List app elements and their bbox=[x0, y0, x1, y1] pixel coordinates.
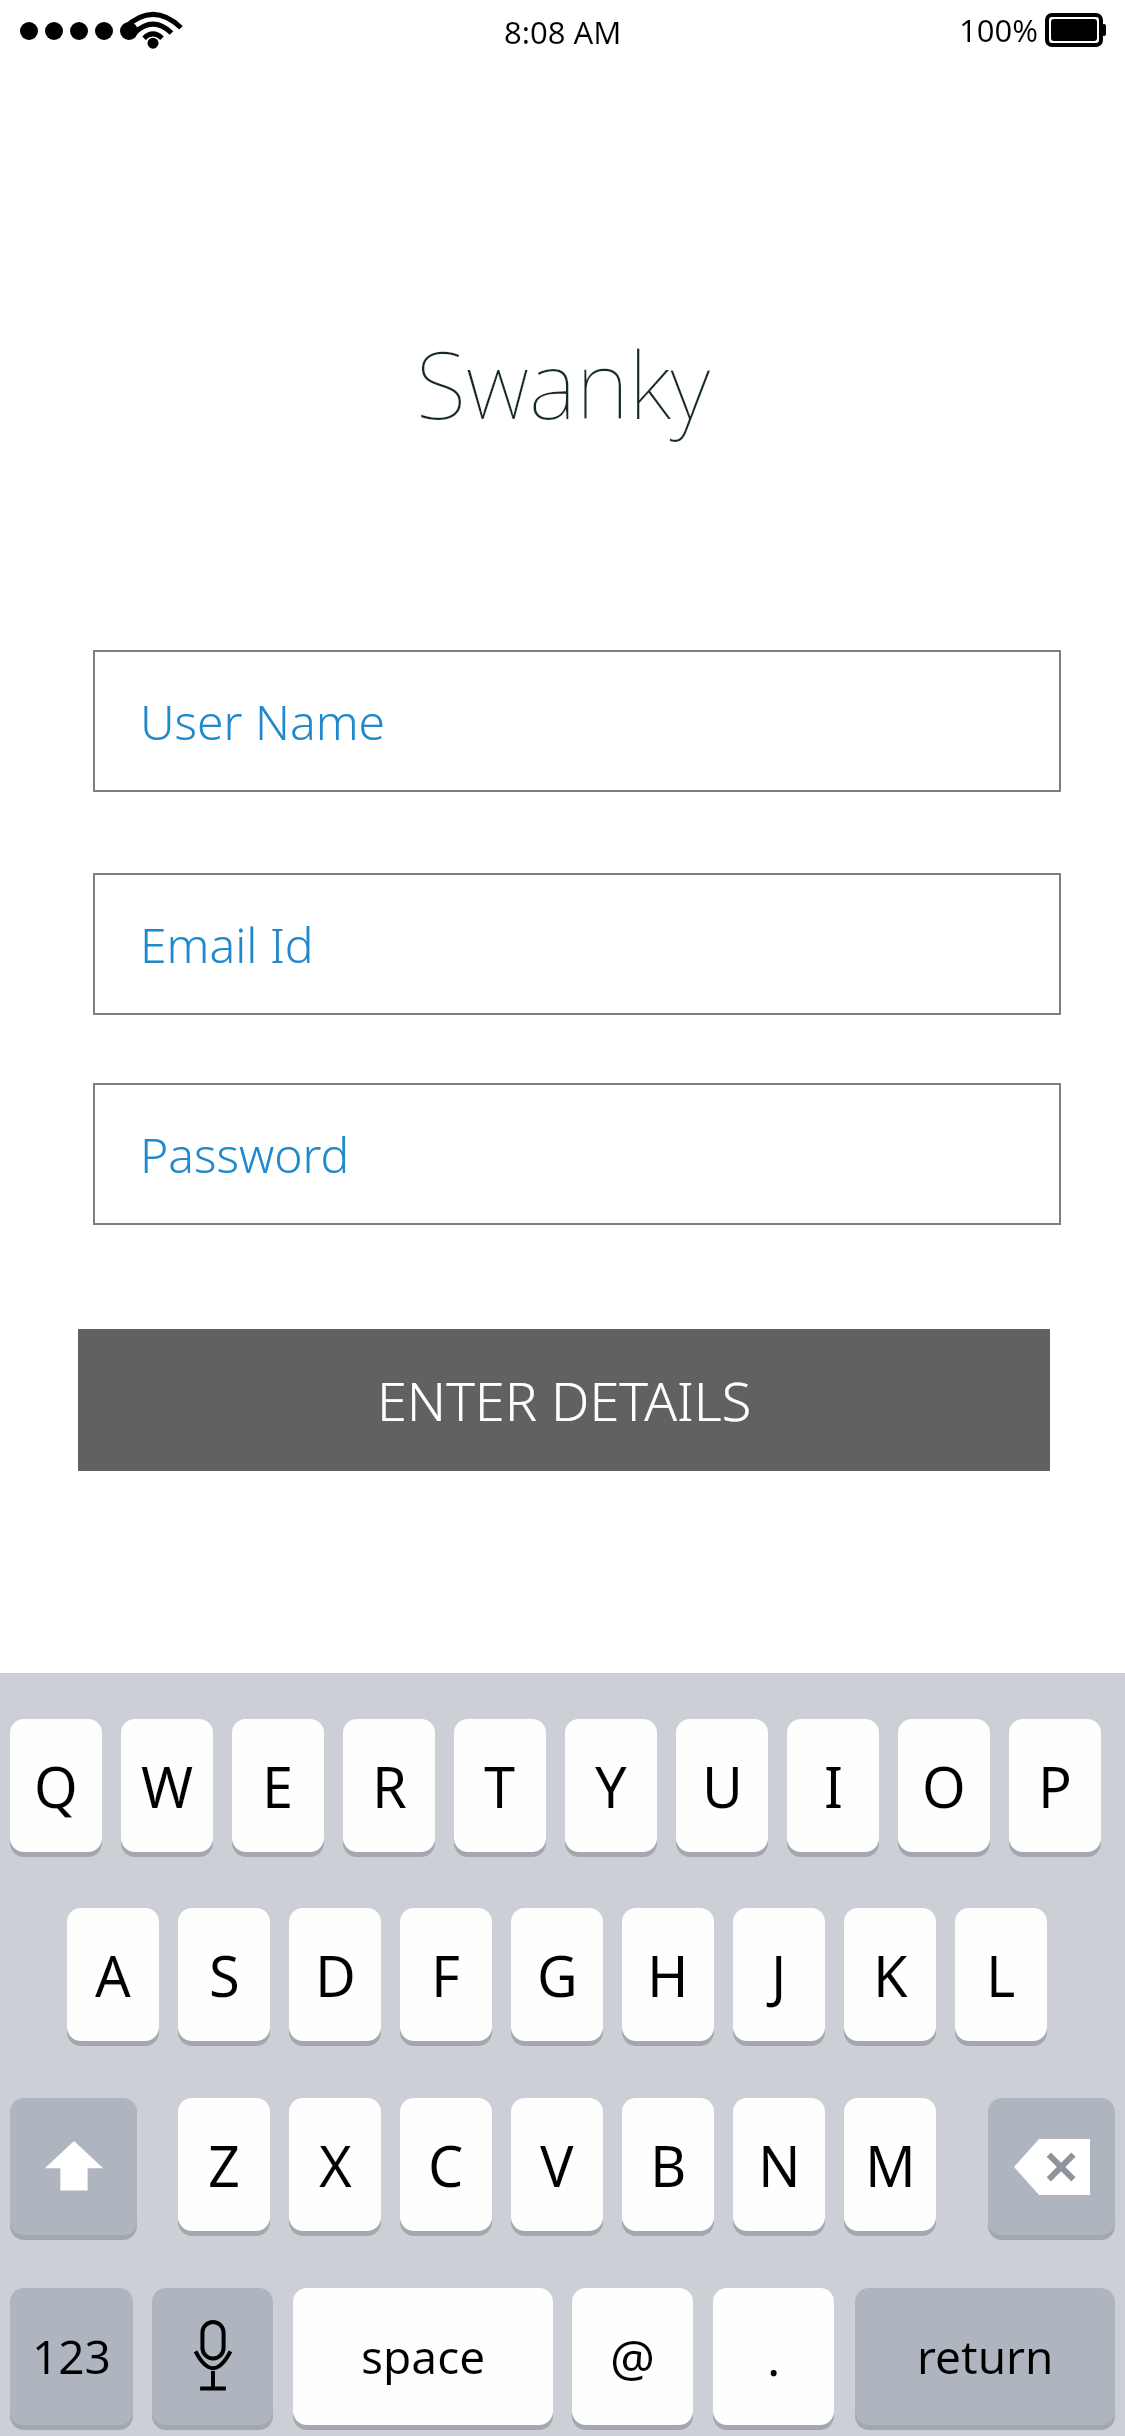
button[interactable]: V bbox=[511, 2098, 603, 2231]
button[interactable]: N bbox=[733, 2098, 825, 2231]
button[interactable]: R bbox=[343, 1719, 435, 1852]
button[interactable]: D bbox=[289, 1908, 381, 2041]
staticText: F bbox=[431, 1937, 461, 2013]
staticText: 8:08 AM bbox=[504, 11, 622, 53]
button[interactable]: . bbox=[713, 2288, 834, 2425]
staticText: O bbox=[922, 1748, 966, 1824]
staticText: L bbox=[986, 1937, 1016, 2013]
staticText: H bbox=[647, 1937, 689, 2013]
staticText: I bbox=[824, 1748, 843, 1824]
button[interactable]: Y bbox=[565, 1719, 657, 1852]
staticText: B bbox=[650, 2127, 687, 2203]
button[interactable]: X bbox=[289, 2098, 381, 2231]
button[interactable]: Email Id bbox=[93, 873, 1061, 1015]
button[interactable]: Dictation bbox=[152, 2288, 273, 2425]
button[interactable]: C bbox=[400, 2098, 492, 2231]
staticText: P bbox=[1038, 1748, 1072, 1824]
button[interactable]: I bbox=[787, 1719, 879, 1852]
staticText: ENTER DETAILS bbox=[377, 1363, 752, 1437]
button[interactable]: Backspace bbox=[988, 2098, 1115, 2235]
staticText: A bbox=[95, 1937, 131, 2013]
button[interactable]: U bbox=[676, 1719, 768, 1852]
staticText: V bbox=[540, 2127, 574, 2203]
staticText: Swanky bbox=[416, 321, 710, 446]
staticText: Z bbox=[208, 2127, 241, 2203]
staticText: R bbox=[372, 1748, 407, 1824]
staticText: X bbox=[319, 2127, 352, 2203]
button[interactable]: return bbox=[855, 2288, 1115, 2425]
staticText: S bbox=[209, 1937, 240, 2013]
button[interactable]: @ bbox=[572, 2288, 693, 2425]
button[interactable]: B bbox=[622, 2098, 714, 2231]
button[interactable]: ENTER DETAILS bbox=[78, 1329, 1050, 1471]
staticText: Y bbox=[595, 1748, 627, 1824]
staticText: U bbox=[702, 1748, 743, 1824]
staticText: @ bbox=[610, 2323, 655, 2391]
staticText: Email Id bbox=[140, 912, 314, 977]
staticText: return bbox=[917, 2325, 1054, 2388]
button[interactable]: M bbox=[844, 2098, 936, 2231]
button[interactable]: O bbox=[898, 1719, 990, 1852]
button[interactable]: F bbox=[400, 1908, 492, 2041]
staticText: space bbox=[361, 2325, 486, 2388]
staticText: G bbox=[537, 1937, 578, 2013]
button[interactable]: W bbox=[121, 1719, 213, 1852]
staticText: 100% bbox=[959, 9, 1038, 51]
staticText: User Name bbox=[140, 689, 386, 754]
staticText: Q bbox=[34, 1748, 78, 1824]
button[interactable]: K bbox=[844, 1908, 936, 2041]
staticText: J bbox=[771, 1937, 787, 2013]
button[interactable]: 123 bbox=[10, 2288, 133, 2425]
button[interactable]: Password bbox=[93, 1083, 1061, 1225]
button[interactable]: J bbox=[733, 1908, 825, 2041]
staticText: K bbox=[873, 1937, 908, 2013]
staticText: N bbox=[758, 2127, 801, 2203]
button[interactable]: space bbox=[293, 2288, 553, 2425]
button[interactable]: S bbox=[178, 1908, 270, 2041]
staticText: D bbox=[315, 1937, 356, 2013]
button[interactable]: G bbox=[511, 1908, 603, 2041]
button[interactable]: User Name bbox=[93, 650, 1061, 792]
staticText: T bbox=[484, 1748, 516, 1824]
staticText: Password bbox=[140, 1122, 350, 1187]
button[interactable]: Shift bbox=[10, 2098, 137, 2235]
button[interactable]: E bbox=[232, 1719, 324, 1852]
button[interactable]: H bbox=[622, 1908, 714, 2041]
staticText: C bbox=[428, 2127, 464, 2203]
staticText: 123 bbox=[32, 2325, 111, 2388]
button[interactable]: Z bbox=[178, 2098, 270, 2231]
button[interactable]: Q bbox=[10, 1719, 102, 1852]
staticText: E bbox=[262, 1748, 294, 1824]
button[interactable]: A bbox=[67, 1908, 159, 2041]
button[interactable]: T bbox=[454, 1719, 546, 1852]
staticText: M bbox=[865, 2127, 916, 2203]
button[interactable]: L bbox=[955, 1908, 1047, 2041]
staticText: W bbox=[141, 1748, 194, 1824]
staticText: . bbox=[767, 2323, 781, 2391]
button[interactable]: P bbox=[1009, 1719, 1101, 1852]
